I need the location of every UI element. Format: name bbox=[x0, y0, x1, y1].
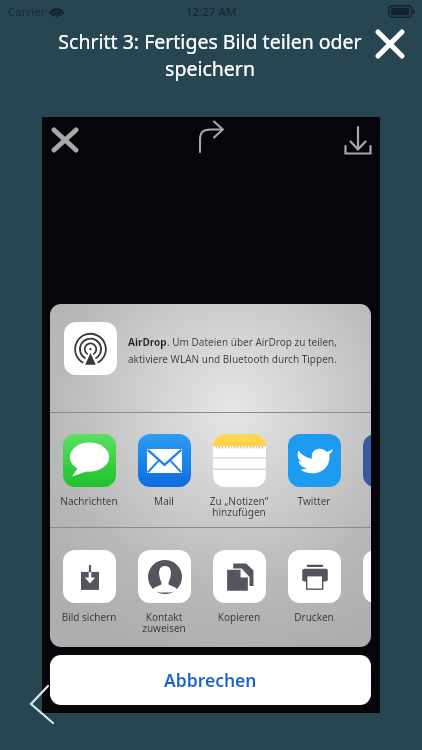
staticText: Nachrichten bbox=[50, 494, 129, 508]
staticText: Twitter bbox=[274, 494, 354, 508]
staticText: aktiviere WLAN und Bluetooth durch Tippe… bbox=[128, 352, 337, 366]
button[interactable]: Nachrichten bbox=[50, 434, 129, 522]
staticText: Zu „Notizen“ hinzufügen bbox=[199, 494, 279, 519]
button[interactable]: Drucken bbox=[274, 550, 354, 638]
button[interactable]: Schließen bbox=[46, 121, 84, 159]
button[interactable]: Abbrechen bbox=[50, 655, 371, 705]
button[interactable]: Zu „Notizen“ hinzufügen bbox=[199, 434, 279, 522]
staticText: 12:27 AM bbox=[186, 4, 237, 20]
staticText: Bild sichern bbox=[50, 610, 129, 624]
button[interactable]: Teilen bbox=[194, 123, 228, 157]
staticText: Kopieren bbox=[199, 610, 279, 624]
staticText: Abbrechen bbox=[164, 668, 257, 692]
button[interactable]: Twitter bbox=[274, 434, 354, 522]
staticText: Kontakt zuweisen bbox=[124, 610, 204, 635]
staticText: Mail bbox=[124, 494, 204, 508]
staticText: Drucken bbox=[274, 610, 354, 624]
button[interactable]: Schließen bbox=[371, 25, 409, 63]
button[interactable]: Zurück bbox=[24, 678, 62, 728]
staticText: AirDrop bbox=[128, 335, 167, 349]
button[interactable]: Kontakt zuweisen bbox=[124, 550, 204, 638]
staticText: Carrier bbox=[8, 4, 46, 20]
button[interactable]: Speichern bbox=[339, 120, 377, 158]
button[interactable]: F bbox=[349, 434, 371, 522]
button[interactable]: Bild sichern bbox=[50, 550, 129, 638]
button[interactable]: Mail bbox=[124, 434, 204, 522]
button[interactable]: Kopieren bbox=[199, 550, 279, 638]
button[interactable]: AirDrop bbox=[64, 322, 117, 375]
staticText: Schritt 3: Fertiges Bild teilen oder spe… bbox=[50, 28, 370, 82]
button[interactable]: I bbox=[349, 550, 371, 638]
staticText: . Um Dateien über AirDrop zu teilen, bbox=[167, 335, 337, 349]
